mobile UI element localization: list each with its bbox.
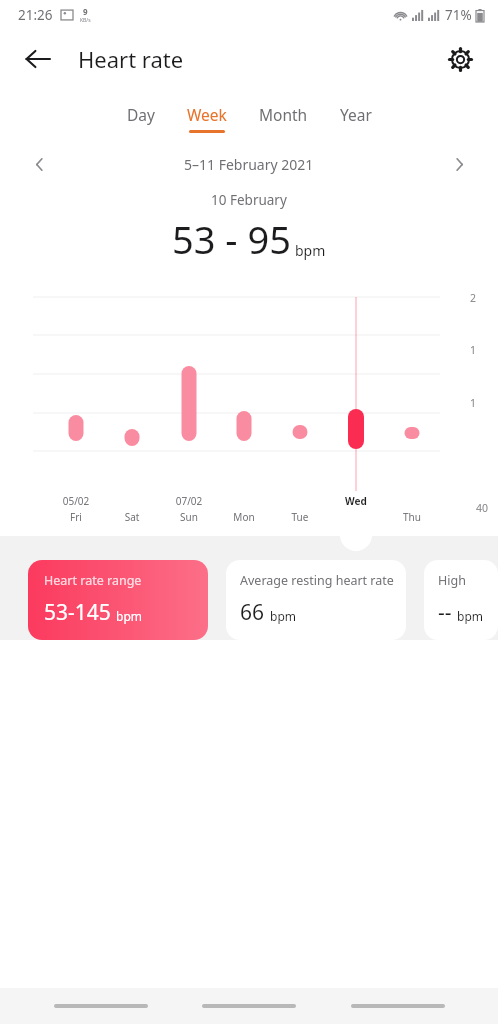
button[interactable]: Day: [111, 102, 171, 135]
staticText: 9: [83, 6, 88, 17]
staticText: 220: [446, 291, 488, 305]
staticText: Fri: [54, 510, 98, 524]
staticText: Sun: [167, 510, 211, 524]
staticText: 130: [446, 396, 488, 410]
button[interactable]: High heart rate: [424, 560, 498, 640]
staticText: Heart rate range: [44, 572, 142, 589]
staticText: Thu: [390, 510, 434, 524]
button[interactable]: Heart rate range: [28, 560, 208, 640]
staticText: 21:26: [18, 6, 53, 24]
button[interactable]: Week: [171, 102, 243, 135]
button[interactable]: Back: [16, 37, 60, 81]
staticText: Average resting heart rate: [240, 572, 394, 589]
staticText: --: [438, 598, 452, 627]
staticText: 05/02: [54, 494, 98, 508]
staticText: bpm: [457, 608, 483, 624]
button[interactable]: Year: [324, 102, 388, 135]
staticText: KB/s: [80, 17, 91, 24]
staticText: 71%: [445, 6, 472, 24]
staticText: 5–11 February 2021: [184, 155, 314, 174]
staticText: bpm: [295, 241, 326, 260]
staticText: Heart rate: [78, 44, 184, 74]
staticText: Tue: [278, 510, 322, 524]
staticText: High heart rate: [438, 572, 498, 589]
button[interactable]: Navigation: [350, 995, 446, 1017]
staticText: 07/02: [167, 494, 211, 508]
button[interactable]: Settings: [438, 37, 482, 81]
staticText: 40: [446, 501, 488, 515]
staticText: Month: [259, 104, 308, 125]
staticText: 175: [446, 343, 488, 357]
staticText: 53-145: [44, 598, 111, 627]
staticText: Year: [340, 104, 372, 125]
button[interactable]: Navigation: [53, 995, 149, 1017]
button[interactable]: Previous week: [22, 151, 56, 177]
button[interactable]: Average resting heart rate: [226, 560, 406, 640]
button[interactable]: Navigation: [201, 995, 297, 1017]
staticText: bpm: [270, 608, 296, 624]
staticText: 53 - 95: [172, 213, 291, 265]
staticText: 66: [240, 598, 265, 627]
staticText: Mon: [222, 510, 266, 524]
staticText: Week: [187, 104, 227, 125]
staticText: bpm: [116, 608, 142, 624]
staticText: Wed: [334, 494, 378, 508]
button[interactable]: Month: [243, 102, 324, 135]
button[interactable]: Next week: [442, 151, 476, 177]
staticText: 10 February: [211, 191, 287, 209]
staticText: Sat: [110, 510, 154, 524]
staticText: Day: [127, 104, 155, 125]
